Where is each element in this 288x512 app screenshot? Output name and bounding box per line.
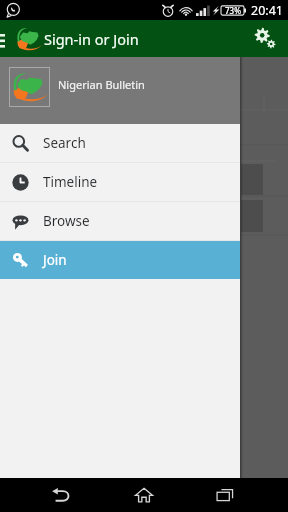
staticText: Join [43, 251, 67, 269]
staticText: 73% [225, 5, 241, 16]
button[interactable]: Settings [251, 25, 279, 53]
button[interactable]: Home [120, 478, 168, 512]
button[interactable]: Back [36, 478, 84, 512]
button[interactable]: Recent apps [201, 478, 249, 512]
button[interactable]: Open navigation menu [0, 20, 10, 57]
button[interactable]: Search [0, 124, 240, 162]
staticText: Timeline [43, 173, 98, 191]
staticText: 20:41 [251, 2, 283, 19]
button[interactable]: Timeline [0, 163, 240, 201]
button[interactable]: Nigerian Bulletin [0, 57, 240, 124]
staticText: Sign-in or Join [44, 29, 139, 49]
button[interactable]: Browse [0, 202, 240, 240]
button[interactable]: Join [0, 241, 240, 279]
staticText: Browse [43, 212, 90, 230]
staticText: Search [43, 134, 86, 152]
staticText: Nigerian Bulletin [58, 77, 145, 92]
